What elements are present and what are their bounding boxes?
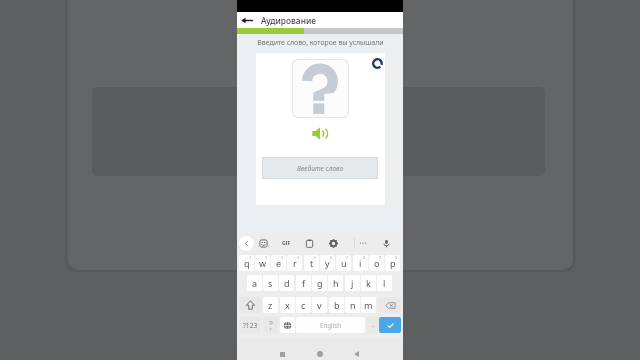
staticText: j <box>351 277 354 289</box>
staticText: v <box>317 299 322 311</box>
button[interactable]: Collapse toolbar <box>239 236 254 251</box>
staticText: t <box>310 257 314 269</box>
button[interactable]: r <box>287 255 302 271</box>
button[interactable]: y <box>320 255 335 271</box>
button[interactable]: e <box>271 255 286 271</box>
staticText: 9 <box>379 255 382 260</box>
button[interactable]: Clipboard <box>302 236 316 250</box>
staticText: 4 <box>297 255 300 260</box>
staticText: b <box>334 299 340 311</box>
staticText: s <box>268 277 273 289</box>
button[interactable]: m <box>361 297 376 313</box>
button[interactable]: n <box>345 297 360 313</box>
staticText: English <box>320 321 342 329</box>
button[interactable]: GIF <box>279 236 293 250</box>
button[interactable]: Back <box>347 345 365 360</box>
button[interactable]: Submit <box>379 317 401 333</box>
staticText: q <box>244 257 250 269</box>
staticText: 1 <box>249 255 252 260</box>
button[interactable]: k <box>361 275 376 291</box>
staticText: . <box>372 320 374 330</box>
button[interactable]: u <box>336 255 351 271</box>
staticText: p <box>390 257 396 269</box>
button[interactable]: q <box>239 255 254 271</box>
staticText: x <box>285 299 290 311</box>
staticText: Введите слово, которое вы услышали <box>257 38 384 47</box>
staticText: o <box>374 257 380 269</box>
button[interactable]: v <box>312 297 327 313</box>
button[interactable]: Comma <box>263 317 278 333</box>
button[interactable]: z <box>263 297 278 313</box>
staticText: a <box>252 277 258 289</box>
staticText: 7 <box>346 255 349 260</box>
button[interactable]: Play audio <box>307 122 332 144</box>
staticText: f <box>302 277 306 289</box>
button[interactable]: i <box>353 255 368 271</box>
button[interactable]: Введите слово <box>263 158 377 178</box>
staticText: m <box>364 299 373 311</box>
button[interactable]: Change language <box>280 317 295 333</box>
staticText: e <box>276 257 282 269</box>
button[interactable]: o <box>369 255 384 271</box>
staticText: u <box>341 257 347 269</box>
button[interactable]: Home <box>311 345 329 360</box>
staticText: w <box>259 257 267 269</box>
button[interactable]: Shift <box>239 297 261 313</box>
staticText: 2 <box>265 255 268 260</box>
staticText: k <box>366 277 371 289</box>
staticText: y <box>325 257 330 269</box>
button[interactable]: Voice input <box>379 236 393 250</box>
staticText: h <box>333 277 339 289</box>
button[interactable]: Backspace <box>379 297 401 313</box>
staticText: 6 <box>330 255 333 260</box>
button[interactable]: f <box>296 275 311 291</box>
button[interactable]: l <box>377 275 392 291</box>
button[interactable]: a <box>247 275 262 291</box>
staticText: l <box>383 277 386 289</box>
button[interactable]: c <box>296 297 311 313</box>
staticText: z <box>268 299 273 311</box>
button[interactable]: More options <box>356 236 370 250</box>
staticText: GIF <box>282 240 291 247</box>
button[interactable]: Recents <box>273 345 291 360</box>
staticText: c <box>301 299 306 311</box>
button[interactable]: x <box>280 297 295 313</box>
button[interactable]: d <box>279 275 294 291</box>
button[interactable]: t <box>304 255 319 271</box>
staticText: Аудирование <box>261 15 316 26</box>
staticText: n <box>350 299 356 311</box>
staticText: 0 <box>395 255 398 260</box>
staticText: Введите слово <box>297 164 344 173</box>
button[interactable]: g <box>312 275 327 291</box>
staticText: g <box>317 277 323 289</box>
staticText: ?123 <box>243 321 258 330</box>
button[interactable]: Stickers <box>256 236 270 250</box>
staticText: r <box>293 257 297 269</box>
button[interactable]: Settings <box>326 236 340 250</box>
button[interactable]: p <box>385 255 400 271</box>
staticText: i <box>359 257 362 269</box>
staticText: d <box>284 277 290 289</box>
staticText: 3 <box>281 255 284 260</box>
button[interactable]: Symbols <box>239 317 261 333</box>
button[interactable]: j <box>345 275 360 291</box>
button[interactable]: s <box>263 275 278 291</box>
button[interactable]: b <box>329 297 344 313</box>
button[interactable]: English <box>296 317 365 333</box>
staticText: 5 <box>314 255 317 260</box>
button[interactable]: w <box>255 255 270 271</box>
button[interactable]: Back <box>237 12 257 28</box>
button[interactable]: Period <box>367 317 378 333</box>
staticText: 8 <box>363 255 366 260</box>
button[interactable]: h <box>328 275 343 291</box>
